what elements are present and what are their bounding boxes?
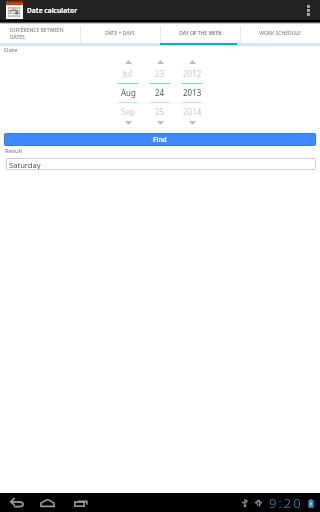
button[interactable]: Increment [176,57,208,66]
staticText: Saturday [9,160,41,170]
staticText: 2012 [183,68,202,79]
staticText: DATE + DAYS [105,30,135,37]
staticText: 24 [155,87,165,98]
staticText: Date [4,46,18,54]
button[interactable]: DATE + DAYS [80,24,160,43]
button[interactable]: Increment [112,57,144,66]
staticText: 2014 [183,106,202,117]
button[interactable]: Home [36,493,59,512]
staticText: Find [153,135,167,144]
staticText: Date calculator [27,6,78,15]
button[interactable]: More options [298,0,318,20]
button[interactable]: Back [5,493,28,512]
button[interactable]: Decrement [112,118,144,127]
button[interactable]: DIFFERENCE BETWEEN DATES [0,24,73,43]
button[interactable]: Recent apps [69,493,92,512]
staticText: 9:20 [269,494,303,512]
staticText: 2013 [183,87,202,98]
button[interactable]: Increment [144,57,176,66]
staticText: DAY OF THE WEEK [179,30,222,37]
button[interactable]: Decrement [144,118,176,127]
staticText: 25 [155,106,165,117]
staticText: WORK SCHEDULE [259,30,301,37]
staticText: 23 [155,68,165,79]
button[interactable]: Find [4,133,316,146]
button[interactable]: Decrement [176,118,208,127]
staticText: Aug [121,87,136,98]
button[interactable]: WORK SCHEDULE [240,24,320,43]
staticText: Result [5,147,23,155]
button[interactable]: DAY OF THE WEEK [160,24,240,43]
staticText: Jul [123,68,133,79]
staticText: DIFFERENCE BETWEEN DATES [10,27,64,40]
staticText: Sep [121,106,135,117]
button[interactable]: Saturday [6,158,316,170]
